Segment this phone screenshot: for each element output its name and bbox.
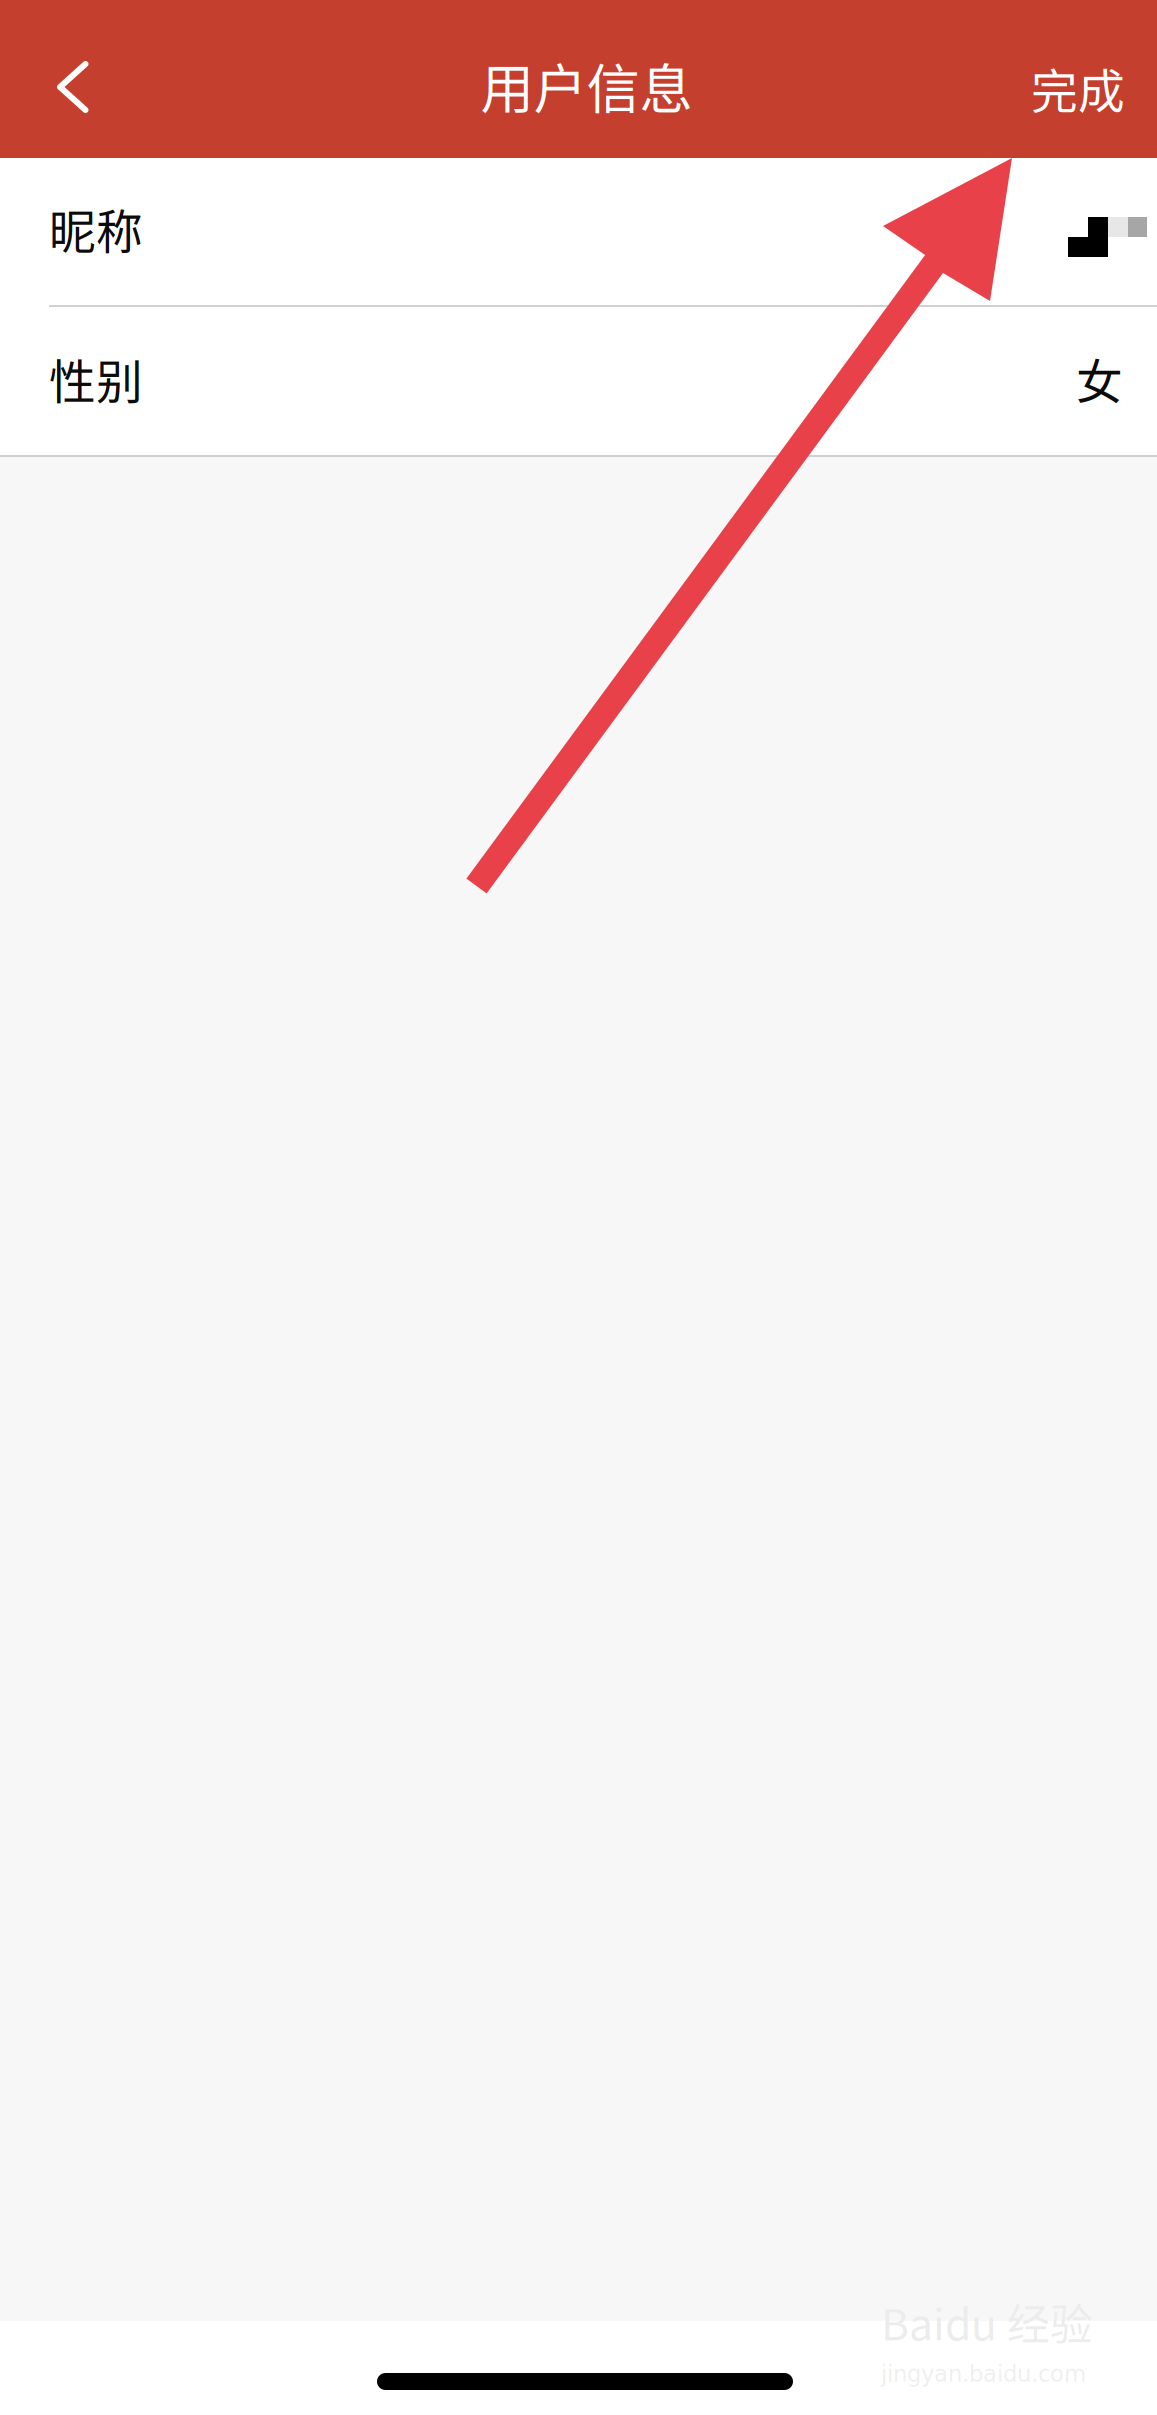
button[interactable]: 完成 bbox=[999, 36, 1157, 146]
staticText: Baidu 经验 bbox=[881, 2291, 1093, 2353]
staticText: 完成 bbox=[1031, 54, 1125, 122]
button[interactable]: 昵称 bbox=[0, 158, 1157, 305]
staticText: 性别 bbox=[49, 345, 143, 412]
button[interactable]: 性别 bbox=[0, 307, 1157, 455]
staticText: jingyan.baidu.com bbox=[881, 2361, 1086, 2387]
staticText: 昵称 bbox=[49, 195, 143, 262]
staticText: 女 bbox=[1076, 345, 1123, 412]
button[interactable]: 返回 bbox=[0, 36, 150, 146]
staticText: 用户信息 bbox=[480, 47, 692, 124]
